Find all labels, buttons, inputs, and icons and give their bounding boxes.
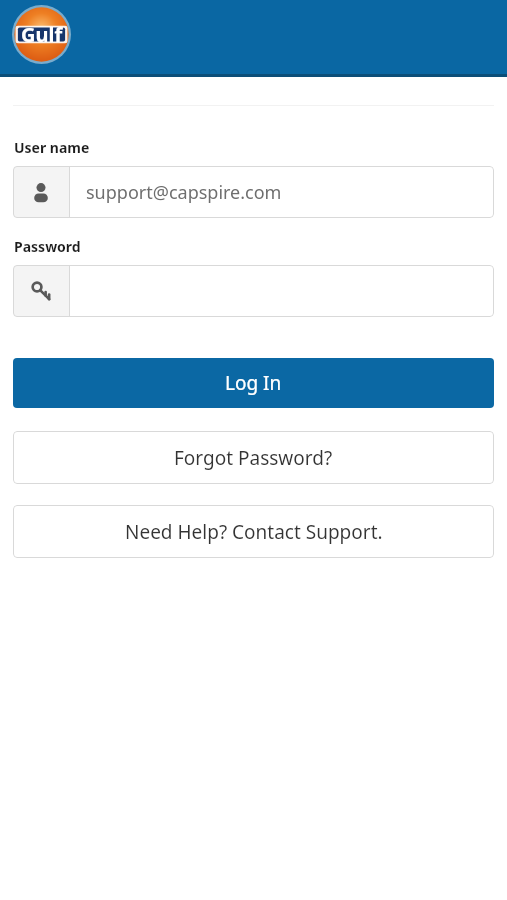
staticText: User name xyxy=(14,138,90,157)
staticText: Password xyxy=(14,237,81,256)
staticText: Log In xyxy=(225,370,282,396)
other: Gulf xyxy=(12,5,71,64)
other: User name xyxy=(13,166,69,218)
button[interactable]: Password xyxy=(13,265,494,317)
staticText: Gulf xyxy=(21,21,63,48)
button[interactable]: Forgot Password? xyxy=(13,431,494,484)
button[interactable]: User name xyxy=(13,166,494,218)
button[interactable]: Need Help? Contact Support. xyxy=(13,505,494,558)
other: Password xyxy=(13,265,69,317)
button[interactable]: Log In xyxy=(13,358,494,408)
staticText: Need Help? Contact Support. xyxy=(125,519,383,545)
staticText: Forgot Password? xyxy=(174,445,333,471)
staticText: support@capspire.com xyxy=(86,180,282,205)
